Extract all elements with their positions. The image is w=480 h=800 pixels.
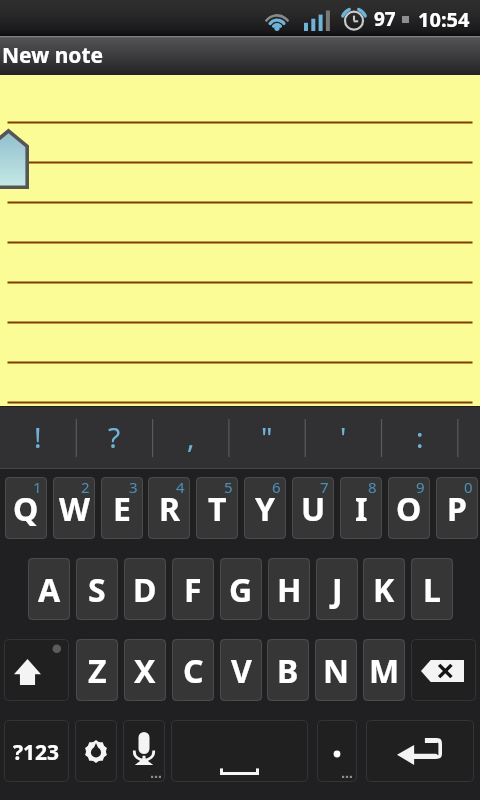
button[interactable]: S: [76, 558, 118, 620]
staticText: J: [332, 568, 343, 612]
button[interactable]: [0, 75, 480, 406]
staticText: 9: [416, 477, 425, 497]
button[interactable]: Enter: [366, 720, 474, 782]
staticText: 8: [368, 477, 377, 497]
button[interactable]: Space: [171, 720, 308, 782]
button[interactable]: J: [316, 558, 358, 620]
button[interactable]: !: [0, 407, 76, 469]
staticText: P: [447, 487, 467, 531]
button[interactable]: K: [363, 558, 405, 620]
button[interactable]: ,: [153, 407, 229, 469]
button[interactable]: F: [172, 558, 214, 620]
staticText: T: [208, 487, 227, 531]
button[interactable]: V: [220, 639, 262, 701]
button[interactable]: T: [196, 477, 238, 539]
staticText: A: [38, 568, 61, 612]
button[interactable]: :: [382, 407, 458, 469]
staticText: U: [301, 487, 326, 531]
staticText: !: [34, 418, 42, 456]
button[interactable]: Input settings: [75, 720, 117, 782]
button[interactable]: ': [305, 407, 381, 469]
staticText: 97: [374, 6, 396, 32]
staticText: I: [355, 487, 368, 531]
staticText: Q: [13, 487, 39, 531]
button[interactable]: Y: [244, 477, 286, 539]
staticText: 10:54: [418, 6, 470, 33]
staticText: New note: [2, 41, 104, 70]
button[interactable]: R: [148, 477, 190, 539]
button[interactable]: G: [220, 558, 262, 620]
staticText: C: [183, 649, 204, 693]
button[interactable]: New note: [0, 36, 480, 75]
staticText: 2: [81, 477, 90, 497]
staticText: ?: [108, 418, 121, 456]
button[interactable]: O: [388, 477, 430, 539]
staticText: W: [59, 487, 90, 531]
button[interactable]: ?: [76, 407, 152, 469]
staticText: V: [231, 649, 252, 693]
staticText: B: [277, 649, 299, 693]
button[interactable]: P: [436, 477, 478, 539]
staticText: ": [261, 418, 273, 456]
button[interactable]: Backspace: [411, 639, 476, 701]
button[interactable]: Shift: [4, 639, 69, 701]
button[interactable]: C: [172, 639, 214, 701]
staticText: 0: [464, 477, 473, 497]
staticText: R: [159, 487, 180, 531]
button[interactable]: N: [315, 639, 357, 701]
staticText: X: [134, 649, 156, 693]
button[interactable]: B: [267, 639, 309, 701]
button[interactable]: ": [229, 407, 305, 469]
button[interactable]: L: [411, 558, 453, 620]
staticText: D: [133, 568, 157, 612]
staticText: 3: [129, 477, 138, 497]
button[interactable]: I: [340, 477, 382, 539]
staticText: K: [373, 568, 395, 612]
staticText: M: [369, 649, 400, 693]
button[interactable]: ?123: [4, 720, 69, 782]
staticText: 4: [176, 477, 185, 497]
button[interactable]: Q: [5, 477, 47, 539]
staticText: 7: [320, 477, 329, 497]
staticText: Y: [255, 487, 276, 531]
staticText: ?123: [13, 738, 60, 767]
button[interactable]: H: [268, 558, 310, 620]
staticText: Z: [88, 649, 107, 693]
staticText: H: [277, 568, 302, 612]
button[interactable]: E: [101, 477, 143, 539]
staticText: O: [396, 487, 422, 531]
button[interactable]: W: [53, 477, 95, 539]
staticText: ': [340, 418, 347, 456]
button[interactable]: U: [292, 477, 334, 539]
button[interactable]: A: [28, 558, 70, 620]
staticText: :: [416, 418, 424, 456]
staticText: 6: [272, 477, 281, 497]
staticText: 1: [33, 477, 42, 497]
staticText: F: [184, 568, 202, 612]
staticText: 5: [224, 477, 233, 497]
button[interactable]: D: [124, 558, 166, 620]
staticText: N: [323, 649, 350, 693]
staticText: L: [423, 568, 441, 612]
staticText: E: [113, 487, 131, 531]
button[interactable]: M: [363, 639, 405, 701]
staticText: S: [88, 568, 106, 612]
button[interactable]: [317, 720, 357, 782]
button[interactable]: Z: [76, 639, 118, 701]
button[interactable]: X: [124, 639, 166, 701]
button[interactable]: Voice input: [123, 720, 165, 782]
staticText: G: [229, 568, 253, 612]
staticText: ,: [187, 418, 195, 456]
